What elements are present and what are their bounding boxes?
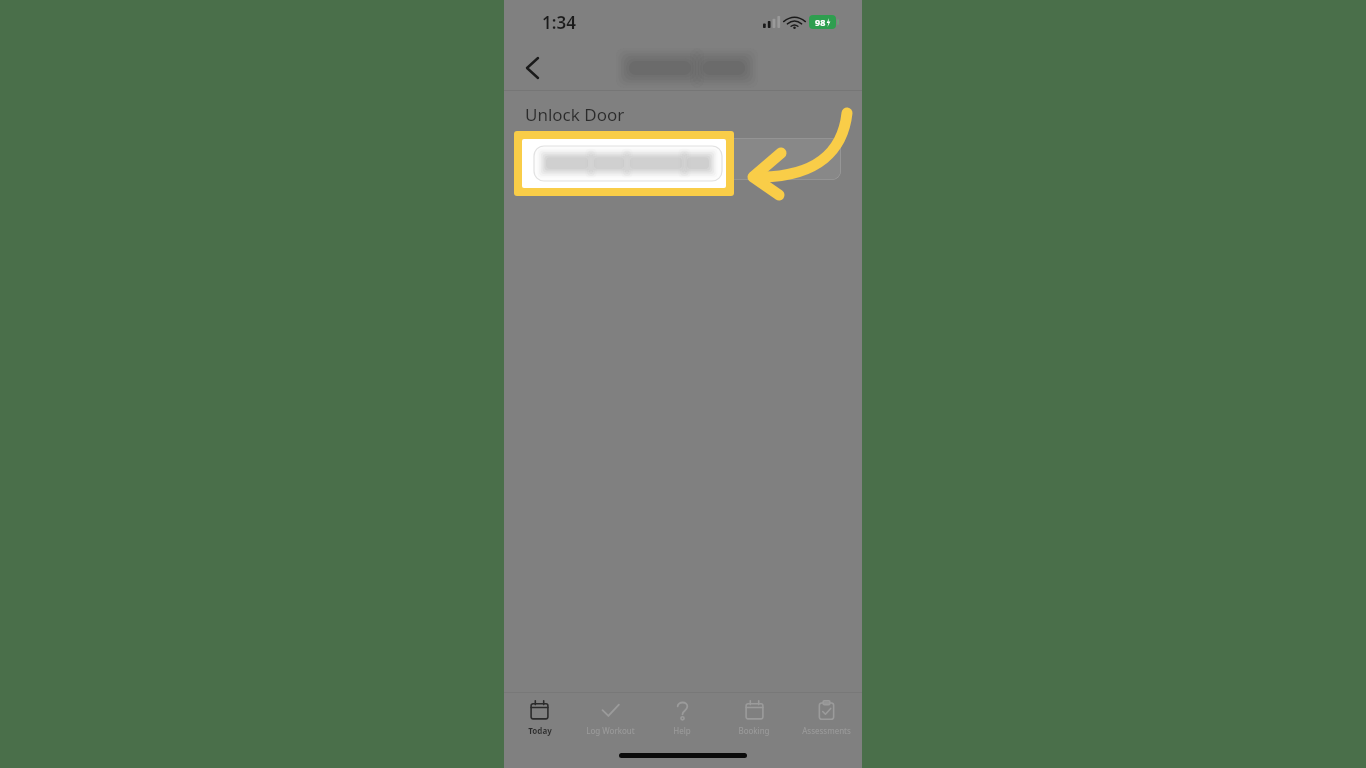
staticText: Log Workout [586,725,635,736]
button[interactable]: Help [646,693,718,746]
staticText: Today [528,725,552,736]
button[interactable]: Booking [718,693,790,746]
staticText: Help [673,725,691,736]
button[interactable]: Today [504,693,575,746]
button[interactable]: Assessments [790,693,862,746]
staticText: Booking [738,725,770,736]
staticText: Assessments [802,725,851,736]
button[interactable]: Back [512,48,552,88]
staticText: 98 [815,16,826,28]
button[interactable] [525,138,841,180]
staticText: 1:34 [542,11,576,34]
staticText: Unlock Door [525,103,625,126]
button[interactable]: Log Workout [575,693,646,746]
